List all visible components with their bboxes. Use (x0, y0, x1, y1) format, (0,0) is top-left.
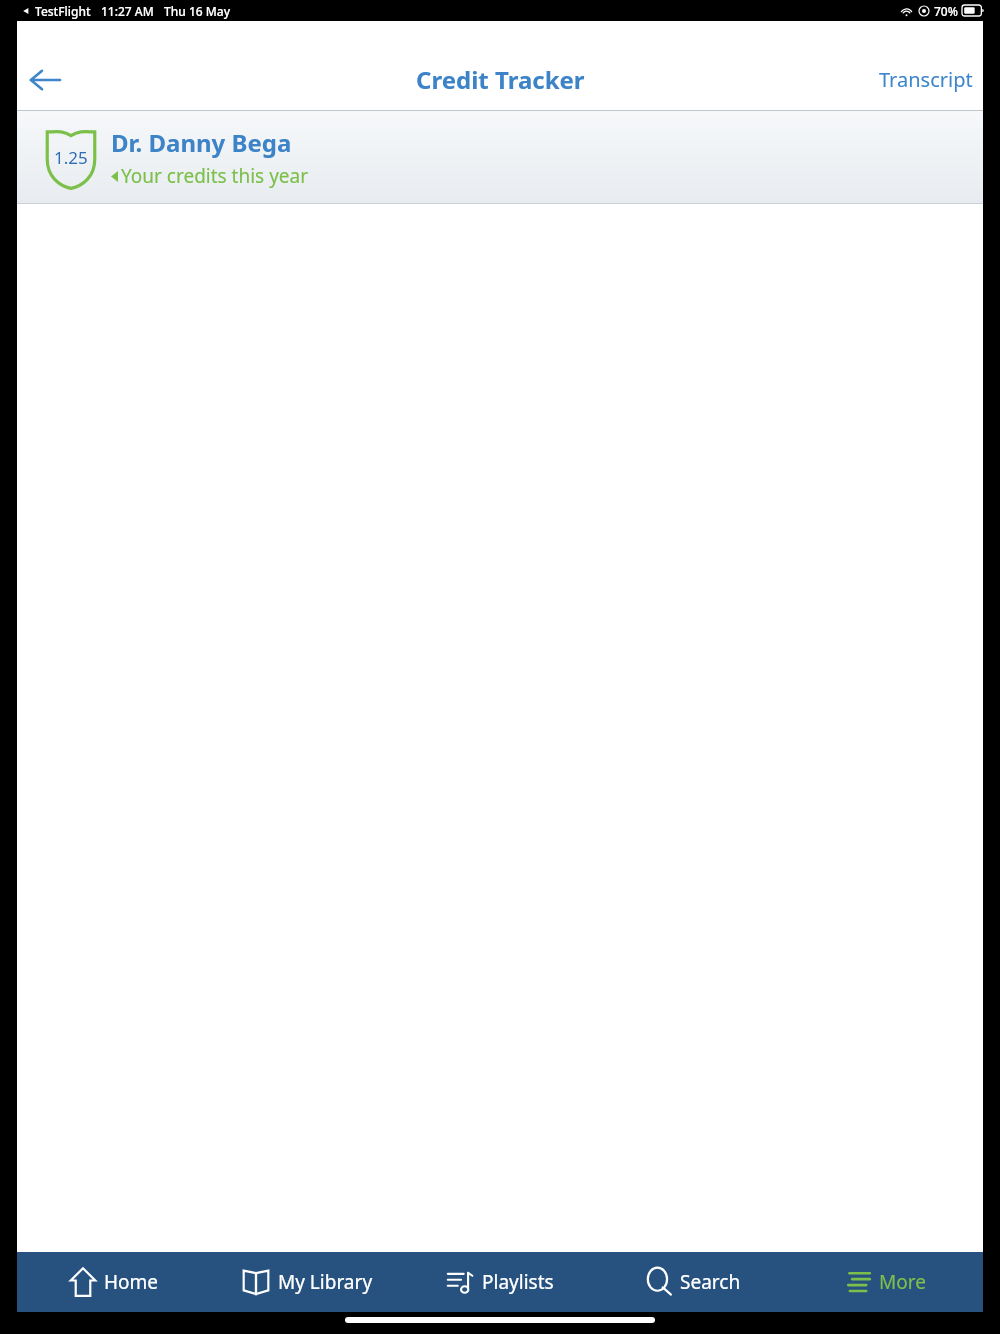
button[interactable]: Back (17, 52, 73, 108)
staticText: My Library (278, 1269, 373, 1295)
staticText: Credit Tracker (416, 63, 585, 96)
button[interactable]: Playlists (404, 1252, 597, 1312)
staticText: 1.25 (54, 146, 88, 169)
button[interactable]: Search (597, 1252, 790, 1312)
staticText: More (879, 1269, 926, 1295)
staticText: Playlists (482, 1269, 554, 1295)
button[interactable]: My Library (211, 1252, 404, 1312)
staticText: Dr. Danny Bega (111, 126, 292, 159)
staticText: Transcript (879, 66, 973, 93)
button[interactable]: Home (17, 1252, 211, 1312)
staticText: Search (680, 1269, 741, 1295)
staticText: TestFlight (35, 3, 91, 19)
staticText: Thu 16 May (164, 3, 230, 19)
staticText: 70% (934, 3, 958, 19)
staticText: Home (104, 1269, 159, 1295)
staticText: 11:27 AM (101, 3, 154, 19)
button[interactable]: 1.25 (17, 111, 983, 204)
staticText: Your credits this year (121, 163, 309, 189)
button[interactable]: Transcript (869, 58, 983, 101)
button[interactable]: More (790, 1252, 983, 1312)
